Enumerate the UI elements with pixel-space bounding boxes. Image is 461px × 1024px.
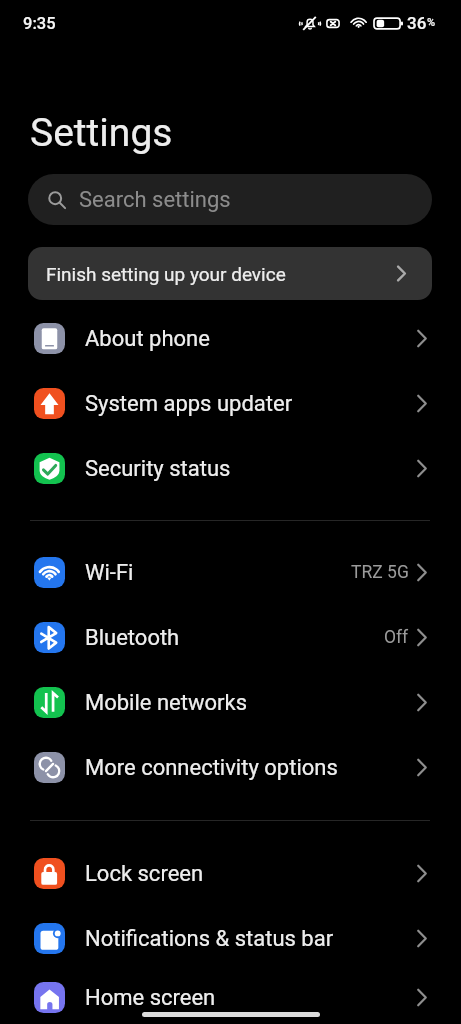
- staticText: Settings: [30, 110, 173, 156]
- button[interactable]: System apps updater: [0, 371, 461, 436]
- button[interactable]: Bluetooth: [0, 605, 461, 670]
- button[interactable]: Wi-Fi: [0, 540, 461, 605]
- staticText: Lock screen: [85, 861, 204, 887]
- staticText: Home screen: [85, 985, 216, 1011]
- staticText: %: [427, 16, 436, 29]
- staticText: 9:35: [23, 14, 56, 33]
- staticText: 36: [407, 13, 427, 33]
- button[interactable]: Security status: [0, 436, 461, 501]
- button[interactable]: Home screen: [0, 971, 461, 1024]
- staticText: System apps updater: [85, 391, 293, 417]
- staticText: Wi-Fi: [85, 560, 134, 586]
- staticText: Off: [384, 627, 409, 648]
- button[interactable]: Finish setting up your device: [28, 247, 432, 300]
- staticText: TRZ 5G: [351, 562, 409, 583]
- button[interactable]: Notifications & status bar: [0, 906, 461, 971]
- button[interactable]: Mobile networks: [0, 670, 461, 735]
- staticText: About phone: [85, 326, 210, 352]
- button[interactable]: Lock screen: [0, 841, 461, 906]
- staticText: Notifications & status bar: [85, 926, 334, 952]
- staticText: Finish setting up your device: [46, 263, 286, 285]
- button[interactable]: More connectivity options: [0, 735, 461, 800]
- button[interactable]: About phone: [0, 306, 461, 371]
- staticText: Mobile networks: [85, 690, 247, 716]
- button[interactable]: Search settings: [28, 174, 432, 225]
- staticText: Search settings: [79, 187, 231, 213]
- staticText: Bluetooth: [85, 625, 180, 651]
- staticText: Security status: [85, 456, 231, 482]
- staticText: More connectivity options: [85, 755, 338, 781]
